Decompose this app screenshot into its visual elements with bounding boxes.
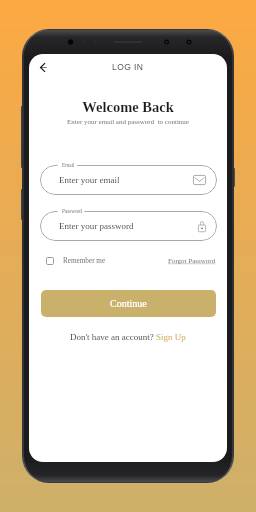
staticText: Don't have an account? Sign Up xyxy=(70,332,186,342)
button[interactable]: Enter your email xyxy=(40,165,217,195)
staticText: Welcome Back xyxy=(29,99,227,115)
staticText: LOG IN xyxy=(112,62,144,71)
staticText: Password xyxy=(62,208,82,214)
staticText: Email xyxy=(62,162,75,168)
staticText: Remember me xyxy=(63,257,106,265)
staticText: Enter your email xyxy=(59,175,120,185)
button[interactable]: Remember me xyxy=(46,257,106,265)
button[interactable]: Enter your password xyxy=(40,211,217,241)
staticText: Continue xyxy=(110,298,147,309)
button[interactable]: Forgot Password xyxy=(168,257,216,265)
button[interactable]: Continue xyxy=(41,290,216,317)
staticText: Enter your password xyxy=(59,221,134,231)
staticText: Enter your email and password to continu… xyxy=(29,118,227,126)
button[interactable]: Don't have an account? Sign Up xyxy=(70,332,186,342)
button[interactable]: Back xyxy=(33,56,55,78)
